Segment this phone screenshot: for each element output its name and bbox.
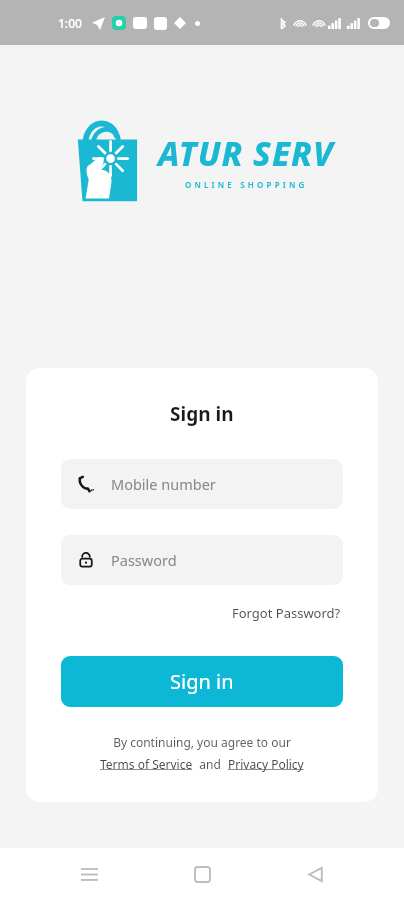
button[interactable]: Back: [291, 850, 339, 898]
button[interactable]: Forgot Password?: [230, 601, 343, 625]
button[interactable]: Privacy Policy: [228, 756, 304, 772]
staticText: 1:00: [58, 15, 82, 31]
staticText: Sign in: [170, 401, 234, 427]
button[interactable]: Recent apps: [65, 850, 113, 898]
staticText: ATUR SERV: [158, 131, 334, 176]
staticText: By continuing, you agree to our: [113, 734, 291, 750]
button[interactable]: Home: [178, 850, 226, 898]
button[interactable]: Password: [61, 535, 343, 585]
staticText: Terms of Service: [100, 756, 193, 772]
button[interactable]: Mobile number: [61, 459, 343, 509]
staticText: Password: [111, 550, 177, 570]
staticText: and: [193, 756, 228, 772]
staticText: ONLINE SHOPPING: [185, 179, 308, 190]
staticText: Privacy Policy: [228, 756, 304, 772]
staticText: Mobile number: [111, 474, 216, 494]
button[interactable]: Sign in: [61, 656, 343, 707]
button[interactable]: Terms of Service: [100, 756, 193, 772]
staticText: Forgot Password?: [232, 604, 341, 622]
staticText: Sign in: [170, 668, 234, 695]
